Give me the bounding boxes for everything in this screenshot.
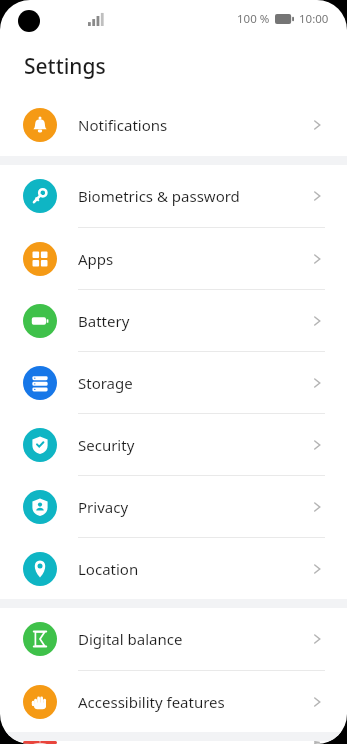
button[interactable]: Battery bbox=[0, 289, 347, 351]
other: Open Users & accounts bbox=[309, 741, 325, 744]
staticText: Privacy bbox=[78, 497, 129, 517]
button[interactable]: Users & accounts bbox=[0, 741, 347, 744]
staticText: Accessibility features bbox=[78, 692, 225, 712]
other: Open Accessibility features bbox=[309, 694, 325, 710]
button[interactable]: Accessibility features bbox=[0, 670, 347, 732]
button[interactable]: Security bbox=[0, 413, 347, 475]
other: Open Notifications bbox=[309, 117, 325, 133]
other: Open Privacy bbox=[309, 499, 325, 515]
button[interactable]: Storage bbox=[0, 351, 347, 413]
staticText: Notifications bbox=[78, 115, 168, 135]
other: Open Battery bbox=[309, 313, 325, 329]
staticText: Settings bbox=[24, 52, 106, 81]
button[interactable]: Apps bbox=[0, 227, 347, 289]
staticText: 10:00 bbox=[299, 11, 329, 27]
other: Open Digital balance bbox=[309, 631, 325, 647]
staticText: Location bbox=[78, 559, 139, 579]
button[interactable]: Biometrics & password bbox=[0, 165, 347, 227]
button[interactable]: Notifications bbox=[0, 94, 347, 156]
staticText: Battery bbox=[78, 311, 130, 331]
button[interactable]: Digital balance bbox=[0, 608, 347, 670]
button[interactable]: Privacy bbox=[0, 475, 347, 537]
staticText: Apps bbox=[78, 249, 114, 269]
other: Open Security bbox=[309, 437, 325, 453]
staticText: Biometrics & password bbox=[78, 186, 240, 206]
other: Open Biometrics & password bbox=[309, 188, 325, 204]
staticText: Digital balance bbox=[78, 629, 183, 649]
staticText: Storage bbox=[78, 373, 133, 393]
staticText: Security bbox=[78, 435, 135, 455]
other: Open Storage bbox=[309, 375, 325, 391]
button[interactable]: Location bbox=[0, 537, 347, 599]
other: Open Apps bbox=[309, 251, 325, 267]
staticText: 100 % bbox=[237, 11, 270, 27]
other: Open Location bbox=[309, 561, 325, 577]
